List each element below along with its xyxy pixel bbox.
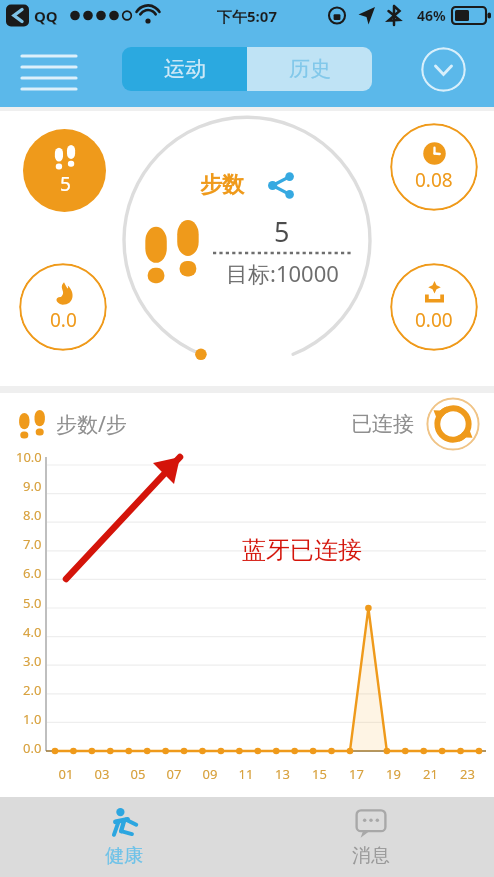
staticText: 17 — [338, 765, 375, 783]
staticText: 21 — [412, 765, 449, 783]
staticText: 10.0 — [16, 448, 42, 466]
staticText: 0.00 — [415, 307, 453, 333]
staticText: 3.0 — [23, 652, 42, 670]
button[interactable]: 运动 — [122, 47, 247, 91]
staticText: 46% — [417, 6, 446, 25]
staticText: 步数/步 — [56, 410, 127, 439]
staticText: 01 — [48, 765, 84, 783]
staticText: 15 — [301, 765, 338, 783]
staticText: 19 — [375, 765, 412, 783]
staticText: 7.0 — [23, 535, 42, 553]
button[interactable]: 0.00 — [390, 263, 478, 351]
staticText: 蓝牙已连接 — [242, 535, 362, 565]
staticText: 4.0 — [23, 623, 42, 641]
staticText: 8.0 — [23, 506, 42, 524]
button[interactable]: Menu — [20, 51, 78, 89]
staticText: 消息 — [352, 844, 390, 868]
button[interactable]: Share — [268, 172, 295, 199]
staticText: 0.08 — [415, 167, 453, 193]
staticText: 03 — [84, 765, 120, 783]
staticText: 5 — [60, 171, 71, 197]
staticText: 11 — [228, 765, 264, 783]
button[interactable]: 历史 — [247, 47, 372, 91]
staticText: 已连接 — [351, 411, 414, 437]
staticText: 1.0 — [23, 710, 42, 728]
staticText: 23 — [449, 765, 486, 783]
button[interactable]: 0.08 — [390, 123, 478, 211]
staticText: 步数 — [200, 171, 244, 199]
button[interactable]: 5 — [23, 129, 106, 212]
staticText: 运动 — [164, 56, 206, 82]
staticText: 5 — [274, 213, 290, 250]
staticText: 5.0 — [23, 594, 42, 612]
staticText: 0.0 — [50, 307, 77, 333]
staticText: 09 — [192, 765, 228, 783]
button[interactable]: Sync — [426, 397, 480, 451]
staticText: 健康 — [105, 844, 143, 868]
button[interactable]: 0.0 — [19, 263, 107, 351]
staticText: 0.0 — [23, 739, 42, 757]
staticText: 9.0 — [23, 477, 42, 495]
staticText: QQ — [34, 6, 58, 26]
staticText: 07 — [156, 765, 192, 783]
staticText: 6.0 — [23, 564, 42, 582]
staticText: 13 — [264, 765, 301, 783]
staticText: 下午5:07 — [217, 6, 277, 26]
staticText: 目标:10000 — [226, 258, 339, 288]
staticText: 历史 — [289, 56, 331, 82]
button[interactable]: 消息 — [247, 797, 494, 877]
button[interactable]: Expand — [421, 47, 466, 92]
button[interactable]: 健康 — [0, 797, 247, 877]
staticText: 05 — [120, 765, 156, 783]
staticText: 2.0 — [23, 681, 42, 699]
